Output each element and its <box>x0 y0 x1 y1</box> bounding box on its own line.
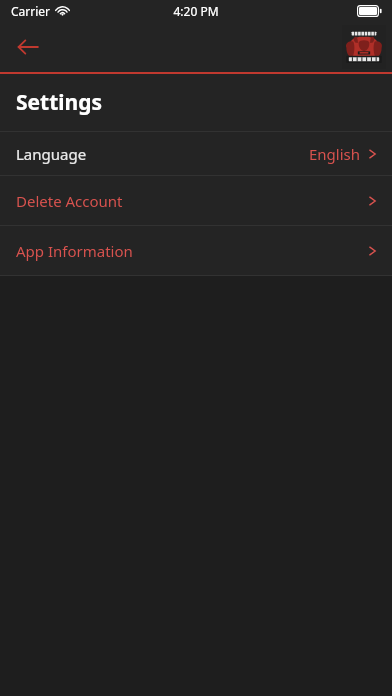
button[interactable]: Language <box>0 132 392 175</box>
staticText: App Information <box>16 241 133 261</box>
button[interactable]: Delete Account <box>0 176 392 225</box>
button[interactable]: El Toro gym logo <box>340 23 388 71</box>
staticText: Delete Account <box>16 191 123 211</box>
button[interactable]: App Information <box>0 226 392 275</box>
staticText: English <box>309 144 361 164</box>
staticText: 4:20 PM <box>173 3 219 19</box>
button[interactable]: Back <box>10 29 46 65</box>
staticText: Settings <box>16 88 103 117</box>
staticText: Language <box>16 144 87 164</box>
staticText: Carrier <box>11 3 51 19</box>
